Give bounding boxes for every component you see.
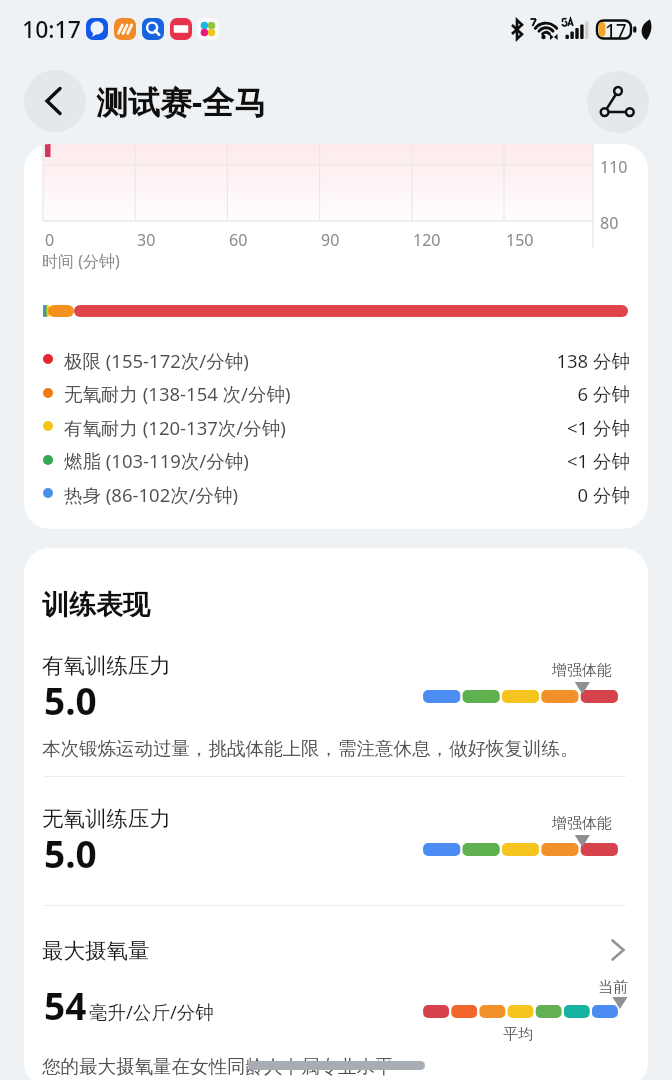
staticText: 有氧训练压力 — [42, 652, 171, 679]
button[interactable]: Back — [24, 70, 86, 132]
button[interactable] — [24, 408, 648, 442]
button[interactable] — [24, 475, 648, 509]
staticText: 60 — [229, 229, 248, 251]
staticText: 增强体能 — [552, 814, 612, 833]
staticText: 平均 — [503, 1025, 533, 1044]
staticText: 150 — [506, 229, 534, 251]
button[interactable] — [24, 341, 648, 375]
staticText: <1 分钟 — [428, 415, 630, 440]
button[interactable] — [24, 441, 648, 475]
staticText: 时间 (分钟) — [42, 250, 120, 272]
staticText: 燃脂 (103-119次/分钟) — [64, 448, 249, 473]
staticText: 极限 (155-172次/分钟) — [64, 348, 249, 373]
staticText: 0 — [45, 229, 55, 251]
staticText: 90 — [321, 229, 340, 251]
staticText: 测试赛-全马 — [96, 80, 267, 124]
staticText: 120 — [413, 229, 441, 251]
button[interactable] — [24, 374, 648, 408]
button[interactable]: 最大摄氧量 — [42, 927, 630, 973]
staticText: 5.0 — [44, 675, 97, 725]
staticText: 无氧训练压力 — [42, 805, 171, 832]
staticText: 6 分钟 — [428, 381, 630, 406]
staticText: 当前 — [598, 978, 628, 997]
staticText: 热身 (86-102次/分钟) — [64, 482, 239, 507]
staticText: 5.0 — [44, 828, 97, 878]
staticText: 本次锻炼运动过量，挑战体能上限，需注意休息，做好恢复训练。 — [42, 737, 579, 760]
staticText: 30 — [137, 229, 156, 251]
staticText: 138 分钟 — [428, 348, 630, 373]
staticText: 训练表现 — [42, 588, 150, 622]
staticText: 80 — [600, 212, 619, 234]
staticText: 17 — [605, 18, 627, 44]
button[interactable]: Share — [587, 71, 649, 133]
staticText: 0 分钟 — [428, 482, 630, 507]
staticText: 最大摄氧量 — [42, 937, 150, 964]
staticText: 无氧耐力 (138-154 次/分钟) — [64, 381, 291, 406]
staticText: 有氧耐力 (120-137次/分钟) — [64, 415, 286, 440]
staticText: 110 — [600, 156, 628, 178]
staticText: <1 分钟 — [428, 448, 630, 473]
staticText: 10:17 — [22, 13, 81, 44]
staticText: 毫升/公斤/分钟 — [89, 999, 214, 1024]
staticText: 您的最大摄氧量在女性同龄人中属专业水平 — [42, 1055, 394, 1078]
staticText: 增强体能 — [552, 661, 612, 680]
staticText: 54 — [44, 980, 87, 1030]
